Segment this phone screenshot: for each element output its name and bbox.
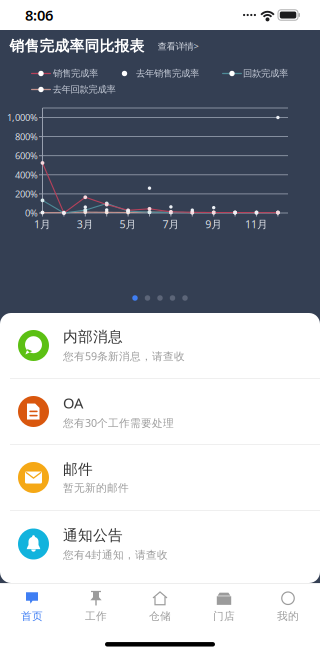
button[interactable]: 我的	[256, 584, 320, 629]
staticText: 首页	[21, 610, 43, 623]
staticText: OA	[63, 393, 83, 413]
staticText: 您有30个工作需要处理	[63, 416, 174, 430]
staticText: 200%	[15, 188, 38, 200]
staticText: 8:06	[25, 5, 53, 25]
staticText: 工作	[85, 610, 107, 623]
staticText: 通知公告	[63, 526, 123, 544]
staticText: 5月	[120, 217, 137, 231]
staticText: 您有59条新消息，请查收	[63, 349, 185, 363]
staticText: 您有4封通知，请查收	[63, 547, 168, 562]
staticText: 门店	[213, 610, 235, 623]
button[interactable]: 邮件	[0, 445, 320, 511]
staticText: 暂无新的邮件	[63, 481, 129, 495]
button[interactable]: 内部消息	[0, 313, 320, 379]
staticText: 去年回款完成率	[53, 84, 116, 95]
button[interactable]: OA	[0, 379, 320, 445]
staticText: 1月	[34, 217, 51, 231]
staticText: 查看详情>	[157, 40, 198, 52]
staticText: 11月	[245, 217, 268, 231]
staticText: 600%	[15, 149, 38, 162]
staticText: 3月	[77, 217, 94, 231]
staticText: 400%	[15, 169, 38, 181]
button[interactable]: 通知公告	[0, 511, 320, 577]
staticText: 销售完成率	[53, 68, 98, 79]
staticText: 仓储	[149, 610, 171, 623]
staticText: 邮件	[63, 460, 93, 478]
staticText: 7月	[162, 217, 179, 231]
staticText: 去年销售完成率	[136, 68, 199, 79]
staticText: 销售完成率同比报表	[9, 37, 144, 55]
staticText: 0%	[25, 207, 38, 219]
button[interactable]: 首页	[0, 584, 64, 629]
button[interactable]: 查看详情>	[155, 37, 200, 55]
staticText: 回款完成率	[243, 68, 288, 79]
staticText: 内部消息	[63, 328, 123, 346]
staticText: 1,000%	[7, 111, 38, 124]
staticText: 800%	[15, 130, 38, 143]
staticText: 9月	[205, 217, 222, 231]
staticText: 我的	[277, 610, 299, 623]
button[interactable]: 仓储	[128, 584, 192, 629]
button[interactable]: 工作	[64, 584, 128, 629]
button[interactable]: 门店	[192, 584, 256, 629]
